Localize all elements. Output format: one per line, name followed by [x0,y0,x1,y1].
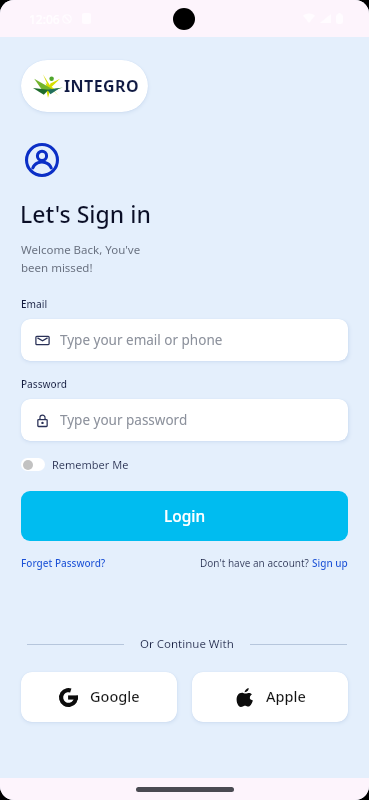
staticText: INTEGRO [64,75,139,97]
staticText: Don't have an account? [200,556,312,570]
staticText: Email [21,297,48,311]
staticText: Login [164,505,206,526]
staticText: Let's Sign in [20,198,151,229]
button[interactable]: Type your password [21,399,348,441]
button[interactable]: Apple [192,672,348,722]
button[interactable]: Sign up [312,556,348,570]
staticText: Type your email or phone [60,331,223,349]
button[interactable]: INTEGRO [21,60,148,112]
other: Account [25,143,59,177]
staticText: Welcome Back, You've been missed! [21,242,141,275]
button[interactable]: Type your email or phone [21,319,348,361]
staticText: Or Continue With [140,636,234,652]
staticText: Apple [266,686,306,706]
button[interactable]: Login [21,491,348,541]
staticText: Password [21,377,67,391]
staticText: Google [90,686,140,706]
button[interactable]: Google [21,672,177,722]
staticText: Type your password [60,411,188,429]
staticText: Remember Me [52,457,129,472]
button[interactable]: Forget Password? [21,556,106,570]
button[interactable]: Remember Me [21,457,129,472]
staticText: 12:06 [29,11,60,27]
